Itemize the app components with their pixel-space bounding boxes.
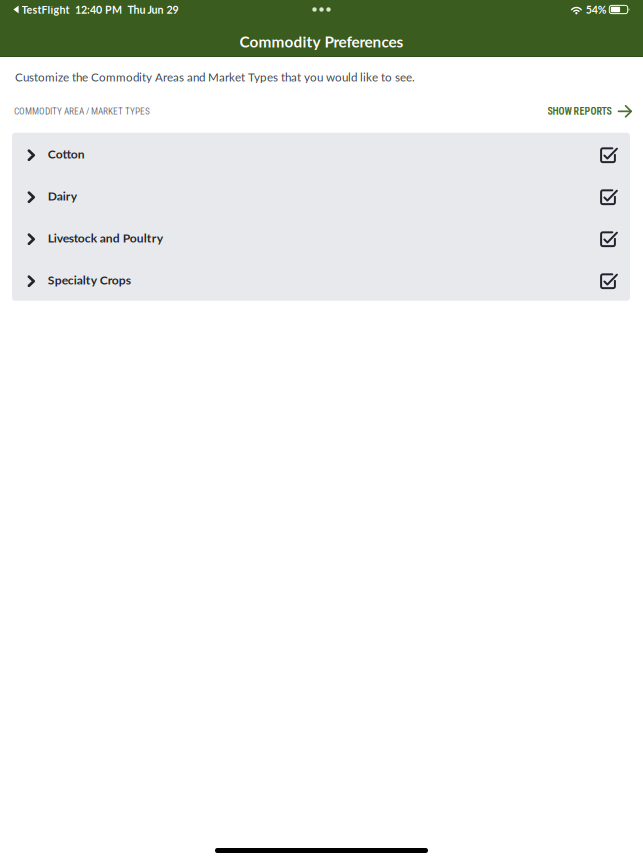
button[interactable]: Dairy xyxy=(12,175,630,217)
staticText: Customize the Commodity Areas and Market… xyxy=(15,70,415,84)
staticText: Livestock and Poultry xyxy=(48,230,163,245)
staticText: 54% xyxy=(586,3,607,16)
staticText: Thu Jun 29 xyxy=(127,3,178,16)
staticText: Commodity Preferences xyxy=(239,32,403,51)
button[interactable]: Cotton xyxy=(12,133,630,175)
staticText: TestFlight xyxy=(21,3,69,16)
button[interactable]: Livestock and Poultry xyxy=(12,217,630,259)
button[interactable]: SHOW REPORTS xyxy=(548,104,643,119)
staticText: COMMODITY AREA / MARKET TYPES xyxy=(14,106,150,117)
staticText: Dairy xyxy=(48,188,77,203)
staticText: Specialty Crops xyxy=(48,272,131,287)
staticText: SHOW REPORTS xyxy=(548,105,612,117)
button[interactable]: Specialty Crops xyxy=(12,259,630,301)
staticText: 12:40 PM xyxy=(75,3,122,16)
staticText: Cotton xyxy=(48,146,85,161)
